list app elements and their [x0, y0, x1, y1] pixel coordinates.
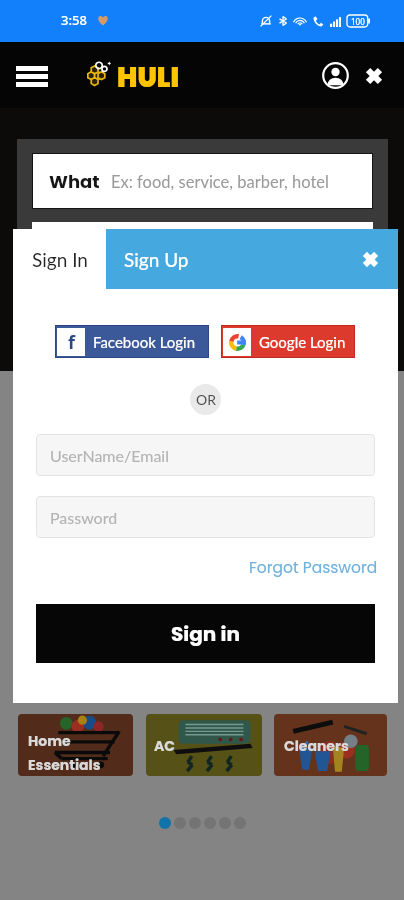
- button[interactable]: Cleaners: [274, 714, 387, 776]
- button[interactable]: Close: [358, 60, 390, 92]
- button[interactable]: Account: [318, 58, 352, 92]
- button[interactable]: Sign In: [13, 229, 106, 289]
- staticText: UserName/Email: [50, 446, 169, 465]
- staticText: f: [68, 330, 75, 355]
- staticText: Password: [50, 508, 118, 527]
- staticText: Sign in: [171, 620, 240, 648]
- staticText: OR: [196, 391, 216, 408]
- button[interactable]: Password: [36, 496, 375, 538]
- staticText: Sign Up: [124, 248, 189, 271]
- button[interactable]: Sign in: [36, 604, 375, 663]
- staticText: Home: [28, 731, 71, 751]
- staticText: Essentials: [28, 755, 101, 775]
- staticText: Cleaners: [284, 736, 349, 756]
- button[interactable]: Sign Up: [106, 229, 398, 289]
- staticText: Facebook Login: [93, 333, 196, 351]
- staticText: 100: [351, 16, 365, 27]
- button[interactable]: Close: [356, 245, 384, 273]
- staticText: 3:58: [61, 11, 87, 29]
- staticText: HULI: [117, 59, 180, 97]
- staticText: What: [49, 169, 100, 194]
- staticText: Sign In: [32, 248, 88, 271]
- button[interactable]: AC: [146, 714, 262, 776]
- staticText: Ex: food, service, barber, hotel: [111, 172, 329, 192]
- button[interactable]: Forgot Password: [249, 557, 378, 579]
- button[interactable]: Google Login: [221, 325, 355, 358]
- button[interactable]: UserName/Email: [36, 434, 375, 476]
- button[interactable]: f: [55, 325, 209, 358]
- staticText: Google Login: [259, 333, 346, 351]
- button[interactable]: Home: [18, 714, 133, 776]
- button[interactable]: Menu: [10, 58, 54, 92]
- staticText: AC: [154, 736, 175, 756]
